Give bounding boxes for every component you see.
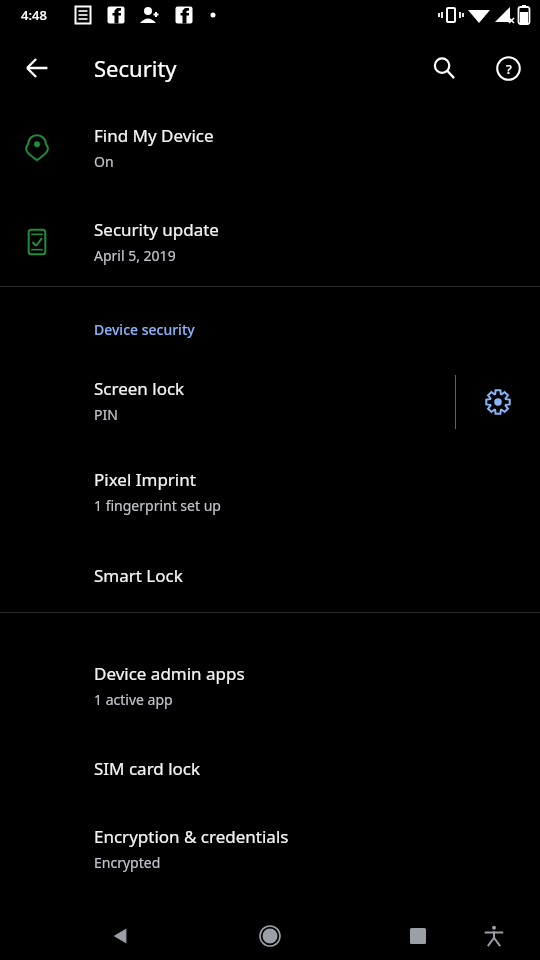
button[interactable]: Home	[246, 912, 294, 960]
staticText: Screen lock	[94, 377, 185, 400]
staticText: Device security	[94, 320, 195, 339]
button[interactable]: Screen lock settings	[474, 378, 522, 426]
button[interactable]: Screen lock	[0, 362, 455, 442]
staticText: Security	[94, 53, 177, 83]
staticText: Encryption & credentials	[94, 825, 289, 848]
staticText: 1 active app	[94, 690, 173, 709]
button[interactable]: Search	[420, 44, 468, 92]
staticText: PIN	[94, 405, 118, 424]
button[interactable]: Help	[484, 44, 532, 92]
button[interactable]: Accessibility	[470, 912, 518, 960]
button[interactable]: Security update	[0, 206, 540, 286]
staticText: 1 fingerprint set up	[94, 496, 221, 515]
button[interactable]: Pixel Imprint	[0, 456, 540, 532]
staticText: On	[94, 152, 114, 171]
staticText: Encrypted	[94, 853, 161, 872]
button[interactable]: SIM card lock	[0, 745, 540, 801]
staticText: Device admin apps	[94, 662, 245, 685]
button[interactable]: Recent apps	[394, 912, 442, 960]
staticText: Security update	[94, 218, 219, 241]
staticText: April 5, 2019	[94, 246, 176, 265]
button[interactable]: Back	[13, 44, 61, 92]
button[interactable]: Back	[96, 912, 144, 960]
staticText: Pixel Imprint	[94, 468, 196, 491]
button[interactable]: Device admin apps	[0, 650, 540, 726]
staticText: Smart Lock	[94, 564, 183, 587]
button[interactable]: Find My Device	[0, 112, 540, 192]
staticText: SIM card lock	[94, 757, 201, 780]
staticText: ?	[506, 60, 512, 78]
staticText: Find My Device	[94, 124, 214, 147]
button[interactable]: Encryption & credentials	[0, 813, 540, 889]
staticText: 4:48	[21, 6, 47, 24]
button[interactable]: Smart Lock	[0, 552, 540, 608]
